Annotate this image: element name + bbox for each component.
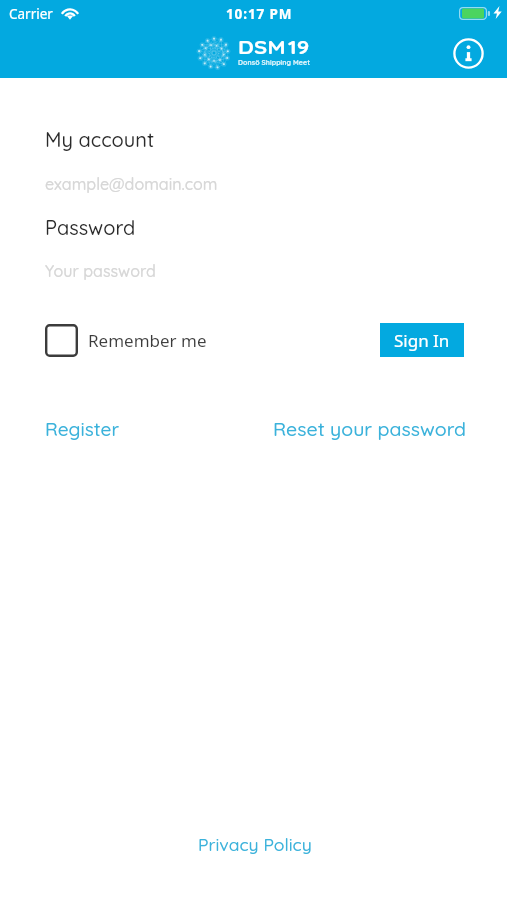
staticText: example@domain.com [45,174,218,194]
staticText: Donsö Shipping Meet [238,58,311,67]
staticText: Reset your password [273,416,467,440]
staticText: Carrier [9,5,53,23]
button[interactable]: Your password [45,261,245,281]
staticText: My account [45,127,155,152]
staticText: Password [45,215,136,240]
staticText: Sign In [394,329,450,352]
staticText: Privacy Policy [198,833,312,855]
button[interactable]: Remember me [45,324,207,357]
button[interactable]: Register [45,417,120,441]
button[interactable]: DSM 19 Donso Shipping Meet [198,33,312,69]
staticText: Remember me [88,329,207,352]
button[interactable]: Privacy Policy [198,833,312,855]
staticText: Your password [45,261,156,281]
staticText: DSM [238,35,287,59]
button[interactable]: Sign In [380,323,464,357]
staticText: Register [45,417,120,441]
button[interactable]: Reset your password [273,416,467,440]
button[interactable]: Info [452,37,484,69]
button[interactable]: example@domain.com [45,174,245,194]
staticText: 10:17 PM [226,5,293,23]
staticText: 19 [288,35,310,59]
button[interactable]: My account [45,127,155,152]
